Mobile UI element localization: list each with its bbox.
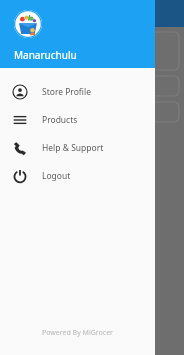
button[interactable]: Help & Support <box>0 134 155 162</box>
staticText: Store Profile <box>42 86 91 98</box>
button[interactable]: Store Profile <box>0 78 155 106</box>
staticText: Manaruchulu <box>14 48 77 62</box>
button[interactable]: Products <box>0 106 155 134</box>
staticText: Help & Support <box>42 142 104 154</box>
staticText: Powered By MiGrocer <box>0 328 155 338</box>
staticText: Products <box>42 114 78 126</box>
staticText: Logout <box>42 170 71 182</box>
button[interactable]: Logout <box>0 162 155 190</box>
